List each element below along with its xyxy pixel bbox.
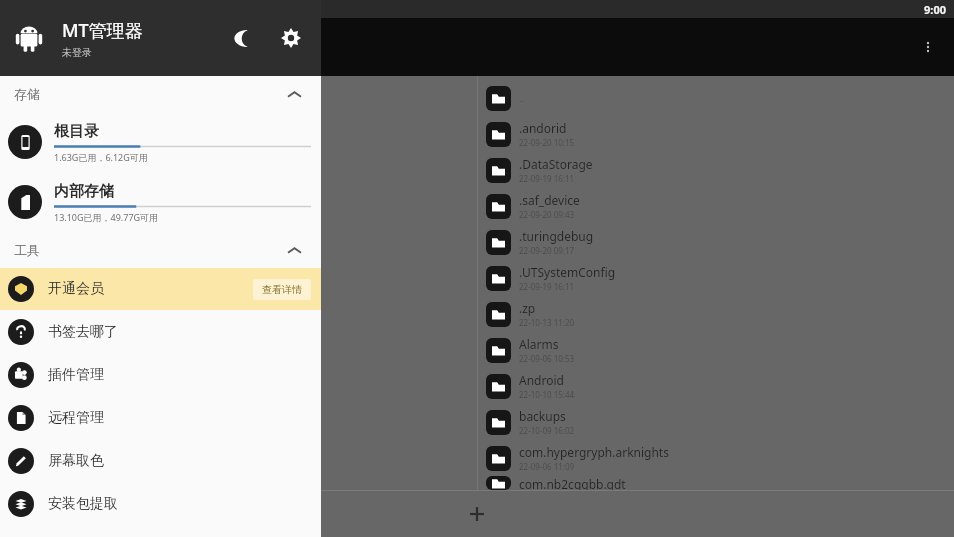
button[interactable]: .DataStorage <box>478 152 954 188</box>
button[interactable]: 书签去哪了 <box>0 310 321 353</box>
staticText: 工具 <box>14 242 40 258</box>
button[interactable]: Android <box>478 368 954 404</box>
button[interactable]: New tab <box>455 492 499 536</box>
staticText: 1.63G已用，6.12G可用 <box>54 151 148 163</box>
staticText: 屏幕取色 <box>48 452 104 470</box>
staticText: com.nb2cqgbb.gdt <box>519 476 626 490</box>
button[interactable]: com.hypergryph.arknights <box>478 440 954 476</box>
staticText: .. <box>519 92 524 104</box>
button[interactable]: .andorid <box>478 116 954 152</box>
staticText: .zp <box>519 300 536 316</box>
staticText: 存储 <box>14 86 40 102</box>
button[interactable]: .zp <box>478 296 954 332</box>
button[interactable]: com.nb2cqgbb.gdt <box>478 476 954 490</box>
staticText: .saf_device <box>519 192 580 208</box>
button[interactable]: 开通会员 <box>0 268 321 310</box>
staticText: com.hypergryph.arknights <box>519 444 669 460</box>
button[interactable]: backups <box>478 404 954 440</box>
staticText: 22-09-20 10:15 <box>519 137 575 148</box>
staticText: 13.10G已用，49.77G可用 <box>54 211 159 223</box>
staticText: 22-09-20 09:17 <box>519 245 575 256</box>
button[interactable]: 根目录 <box>0 112 321 172</box>
staticText: 查看详情 <box>262 283 302 296</box>
button[interactable]: 存储 <box>0 76 321 112</box>
staticText: 22-09-19 16:11 <box>519 173 575 184</box>
staticText: Android <box>519 372 564 388</box>
button[interactable]: 内部存储 <box>0 172 321 232</box>
staticText: .turingdebug <box>519 228 594 244</box>
staticText: 未登录 <box>62 46 92 59</box>
button[interactable]: Night mode <box>223 18 263 58</box>
button[interactable]: 插件管理 <box>0 353 321 396</box>
button[interactable]: .turingdebug <box>478 224 954 260</box>
staticText: 22-10-09 16:02 <box>519 425 575 436</box>
staticText: 22-09-19 16:11 <box>519 281 575 292</box>
staticText: MT管理器 <box>62 18 143 43</box>
button[interactable]: 查看详情 <box>253 279 311 300</box>
staticText: 开通会员 <box>48 280 253 298</box>
button[interactable]: 屏幕取色 <box>0 439 321 482</box>
button[interactable]: More options <box>908 27 948 67</box>
staticText: 内部存储 <box>54 182 114 201</box>
button[interactable]: 远程管理 <box>0 396 321 439</box>
staticText: 安装包提取 <box>48 495 118 513</box>
staticText: Alarms <box>519 336 559 352</box>
staticText: 书签去哪了 <box>48 323 118 341</box>
staticText: backups <box>519 408 566 424</box>
staticText: 22-10-10 15:44 <box>519 389 575 400</box>
staticText: 22-09-20 09:43 <box>519 209 575 220</box>
staticText: .UTSystemConfig <box>519 264 616 280</box>
staticText: .andorid <box>519 120 567 136</box>
staticText: 远程管理 <box>48 409 104 427</box>
staticText: 根目录 <box>54 122 99 141</box>
button[interactable]: 安装包提取 <box>0 482 321 525</box>
button[interactable]: .UTSystemConfig <box>478 260 954 296</box>
button[interactable]: .. <box>478 80 954 116</box>
staticText: 22-09-06 11:09 <box>519 461 575 472</box>
button[interactable]: 工具 <box>0 232 321 268</box>
staticText: 插件管理 <box>48 366 104 384</box>
staticText: .DataStorage <box>519 156 593 172</box>
button[interactable]: Settings <box>271 18 311 58</box>
button[interactable]: .saf_device <box>478 188 954 224</box>
staticText: 22-09-06 10:53 <box>519 353 575 364</box>
staticText: 9:00 <box>924 2 946 17</box>
staticText: 22-10-13 11:20 <box>519 317 575 328</box>
button[interactable]: Alarms <box>478 332 954 368</box>
